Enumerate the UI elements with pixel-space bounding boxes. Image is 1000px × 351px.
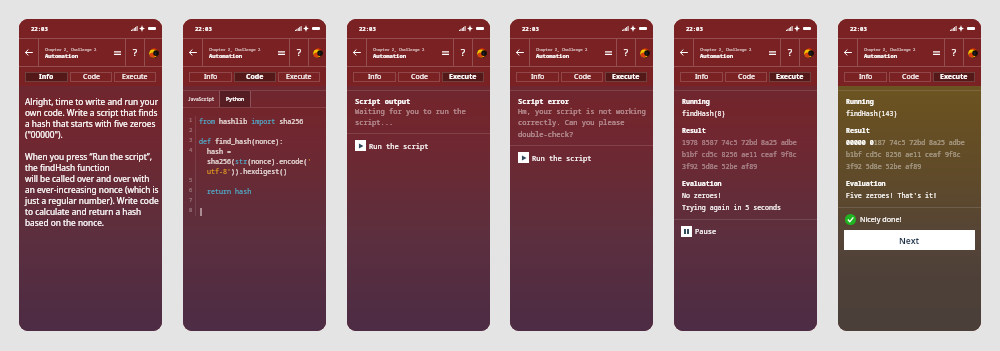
staticText: 22:03 — [359, 25, 376, 33]
staticText: Automation — [45, 52, 79, 59]
staticText: b1bf cd5c 8256 ae11 ceaf 9f8c — [846, 150, 961, 159]
staticText: 22:03 — [850, 25, 867, 33]
staticText: 5 — [189, 176, 193, 184]
staticText: Chapter 2, Challenge 2 — [700, 47, 752, 52]
staticText: Running — [682, 97, 710, 106]
button[interactable]: Info — [189, 72, 232, 82]
staticText: Script output — [355, 96, 411, 106]
button[interactable]: Code — [889, 72, 931, 82]
staticText: ? — [296, 46, 302, 59]
button[interactable]: Help — [290, 39, 308, 66]
staticText: Execute — [286, 72, 312, 82]
button[interactable]: Run the script — [518, 146, 653, 169]
staticText: Code — [246, 72, 264, 82]
staticText: | — [199, 207, 204, 216]
staticText: utf-8')).hexdigest() — [199, 167, 288, 176]
staticText: 4 — [189, 146, 193, 154]
staticText: Evaluation — [682, 179, 722, 188]
staticText: Hm, your script is not working correctly… — [518, 106, 646, 139]
button[interactable]: Execute — [114, 72, 156, 82]
staticText: Chapter 2, Challenge 2 — [864, 47, 916, 52]
staticText: ? — [132, 46, 138, 59]
button[interactable]: Help — [781, 39, 799, 66]
button[interactable]: Profile — [964, 39, 981, 66]
button[interactable]: Info — [680, 72, 723, 82]
button[interactable]: Execute — [605, 72, 647, 82]
button[interactable]: Help — [617, 39, 635, 66]
button[interactable]: Execute — [933, 72, 975, 82]
button[interactable]: Next — [844, 230, 975, 250]
staticText: Info — [695, 72, 709, 82]
button[interactable]: JavaScript — [183, 91, 219, 107]
staticText: Execute — [449, 72, 477, 82]
staticText: Chapter 2, Challenge 2 — [209, 47, 261, 52]
staticText: 22:03 — [522, 25, 539, 33]
staticText: sha256(str(nonce).encode(' — [199, 157, 312, 166]
staticText: Python — [226, 96, 245, 103]
staticText: Evaluation — [846, 179, 886, 188]
staticText: Script error — [518, 96, 570, 106]
staticText: 22:03 — [686, 25, 703, 33]
button[interactable]: Info — [25, 72, 68, 82]
staticText: 3f92 5d8e 52be af89 — [682, 162, 758, 171]
staticText: 7 — [189, 196, 193, 204]
staticText: Info — [368, 72, 382, 82]
button[interactable]: Back — [674, 39, 693, 66]
button[interactable]: Execute — [769, 72, 811, 82]
button[interactable]: Help — [945, 39, 963, 66]
button[interactable]: Help — [126, 39, 144, 66]
staticText: from hashlib import sha256 — [199, 117, 304, 126]
staticText: findHash(8) — [682, 109, 726, 118]
button[interactable]: Code — [70, 72, 112, 82]
staticText: Automation — [373, 52, 407, 59]
button[interactable]: Code — [725, 72, 767, 82]
button[interactable]: Back — [183, 39, 202, 66]
staticText: Five zeroes! That's it! — [846, 191, 937, 200]
button[interactable]: Menu — [600, 39, 616, 66]
button[interactable]: Back — [838, 39, 857, 66]
button[interactable]: Back — [347, 39, 366, 66]
button[interactable]: Execute — [278, 72, 320, 82]
button[interactable]: Back — [19, 39, 38, 66]
staticText: Info — [859, 72, 873, 82]
staticText: Running — [846, 97, 874, 106]
button[interactable]: Help — [454, 39, 472, 66]
staticText: hash = — [199, 147, 236, 156]
button[interactable]: Code — [234, 72, 276, 82]
button[interactable]: Profile — [800, 39, 817, 66]
button[interactable]: Menu — [109, 39, 125, 66]
button[interactable]: Info — [844, 72, 887, 82]
button[interactable]: Back — [510, 39, 529, 66]
button[interactable]: Profile — [309, 39, 326, 66]
button[interactable]: Menu — [764, 39, 780, 66]
button[interactable]: Menu — [273, 39, 289, 66]
button[interactable]: Info — [353, 72, 396, 82]
button[interactable]: Code — [561, 72, 603, 82]
button[interactable]: Pause — [681, 220, 817, 242]
staticText: 1978 8587 74c5 72bd 8a25 adbe — [682, 138, 797, 147]
staticText: Pause — [695, 226, 717, 236]
staticText: Automation — [209, 52, 243, 59]
button[interactable]: Profile — [636, 39, 653, 66]
staticText: Automation — [700, 52, 734, 59]
button[interactable]: Info — [516, 72, 559, 82]
button[interactable]: Execute — [442, 72, 484, 82]
button[interactable]: Python — [220, 91, 250, 107]
staticText: 3 — [189, 136, 193, 144]
staticText: Code — [83, 72, 100, 82]
button[interactable]: Menu — [437, 39, 453, 66]
button[interactable]: Profile — [473, 39, 490, 66]
staticText: Alright, time to write and run your own … — [25, 96, 159, 228]
staticText: 8 — [189, 206, 193, 214]
button[interactable]: Run the script — [355, 134, 490, 157]
staticText: Chapter 2, Challenge 2 — [536, 47, 588, 52]
staticText: ? — [460, 46, 466, 59]
button[interactable]: Menu — [928, 39, 944, 66]
staticText: Waiting for you to run the script... — [355, 106, 466, 127]
button[interactable]: Profile — [145, 39, 162, 66]
staticText: def find_hash(nonce): — [199, 137, 284, 146]
staticText: 1 — [189, 116, 193, 124]
staticText: Chapter 2, Challenge 2 — [45, 47, 97, 52]
staticText: Result — [846, 126, 870, 135]
button[interactable]: Code — [398, 72, 440, 82]
